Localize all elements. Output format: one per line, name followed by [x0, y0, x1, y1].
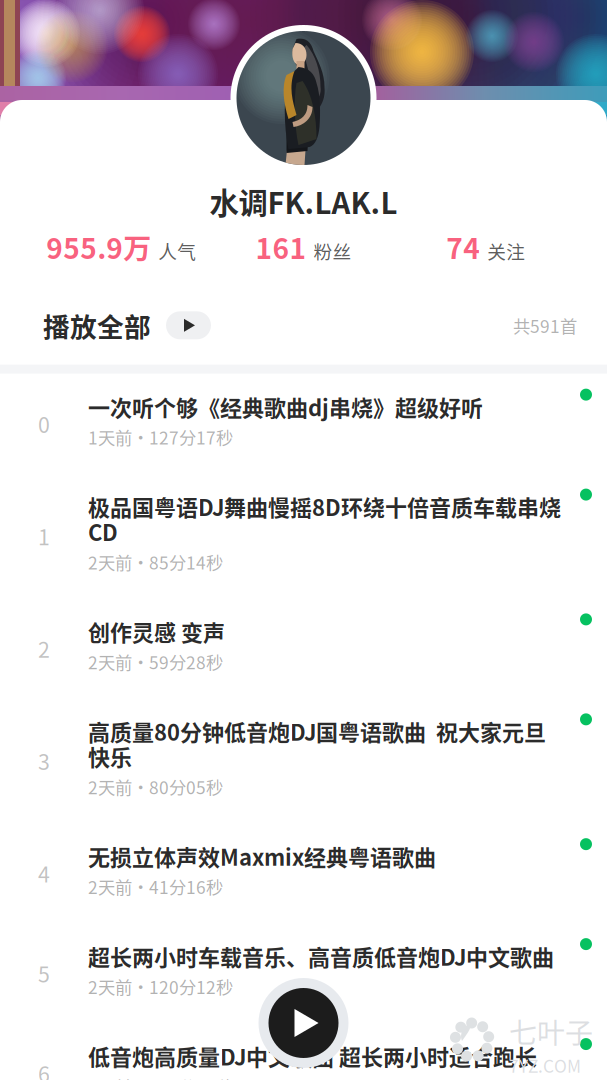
- staticText: 超长两小时车载音乐、高音质低音炮DJ中文歌曲: [88, 940, 554, 972]
- staticText: 3: [38, 745, 50, 776]
- staticText: 创作灵感 变声: [88, 615, 225, 647]
- staticText: 7YZ.COM: [509, 1052, 581, 1078]
- button[interactable]: 播放全部: [43, 306, 211, 345]
- staticText: 人气: [158, 237, 196, 264]
- staticText: 2天前·41分16秒: [88, 874, 223, 899]
- staticText: 低音炮高质量DJ中文歌曲 超长两小时适合跑长: [88, 1040, 537, 1072]
- staticText: 1天前·127分17秒: [88, 424, 233, 450]
- staticText: 6: [38, 1058, 50, 1080]
- button[interactable]: 6: [0, 1023, 607, 1080]
- button[interactable]: 955.9万: [30, 226, 212, 267]
- staticText: 1: [38, 520, 50, 551]
- staticText: 粉丝: [313, 237, 351, 264]
- staticText: 七叶子: [509, 1011, 593, 1051]
- staticText: 共591首: [513, 313, 577, 338]
- staticText: 播放全部: [43, 306, 151, 345]
- staticText: 极品国粤语DJ舞曲慢摇8D环绕十倍音质车载串烧CD: [88, 491, 561, 547]
- button[interactable]: 0: [0, 374, 607, 474]
- staticText: 955.9万: [46, 226, 151, 267]
- staticText: 水调FK.LAK.L: [209, 180, 397, 222]
- button[interactable]: 5: [0, 923, 607, 1023]
- staticText: 4: [38, 858, 50, 889]
- staticText: 2天前·85分14秒: [88, 549, 223, 574]
- button[interactable]: 2: [0, 598, 607, 698]
- staticText: 2: [38, 633, 50, 664]
- button[interactable]: 1: [0, 474, 607, 598]
- staticText: 高质量80分钟低音炮DJ国粤语歌曲 祝大家元旦快乐: [88, 715, 546, 772]
- button[interactable]: Play: [258, 978, 348, 1068]
- staticText: 一次听个够《经典歌曲dj串烧》超级好听: [88, 391, 483, 422]
- button[interactable]: 4: [0, 823, 607, 923]
- staticText: 0: [38, 408, 50, 439]
- button[interactable]: 3: [0, 698, 607, 823]
- button[interactable]: 161: [212, 226, 395, 267]
- staticText: 2天前·59分28秒: [88, 649, 223, 674]
- button[interactable]: 74: [395, 226, 577, 267]
- staticText: 3天前·118分02秒: [88, 1074, 233, 1080]
- staticText: 5: [38, 958, 50, 988]
- staticText: 无损立体声效Maxmix经典粤语歌曲: [88, 840, 436, 872]
- staticText: 2天前·80分05秒: [88, 774, 223, 799]
- button[interactable]: 共591首: [513, 313, 577, 338]
- staticText: 161: [255, 226, 306, 267]
- staticText: 74: [446, 226, 480, 267]
- staticText: 关注: [487, 237, 525, 264]
- staticText: 2天前·120分12秒: [88, 974, 233, 999]
